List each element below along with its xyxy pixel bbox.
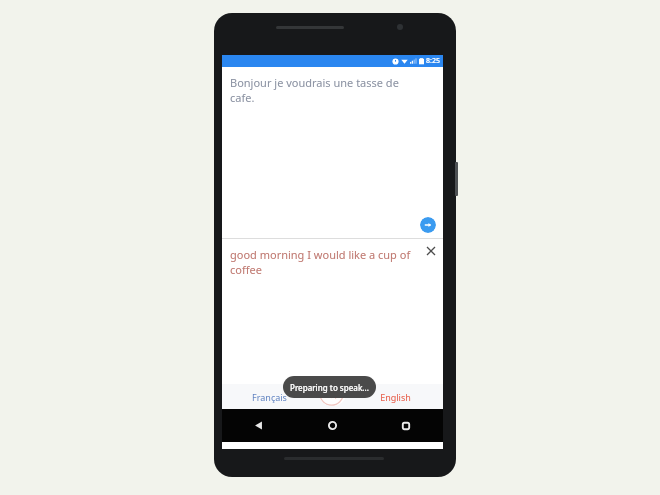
- button[interactable]: English: [347, 384, 443, 409]
- button[interactable]: Back: [222, 409, 295, 442]
- staticText: Français: [252, 391, 287, 403]
- staticText: Preparing to speak...: [290, 382, 369, 393]
- staticText: Bonjour je voudrais une tasse de cafe.: [230, 75, 425, 105]
- button[interactable]: Recent apps: [369, 409, 443, 442]
- button[interactable]: Clear: [423, 243, 439, 259]
- staticText: English: [380, 391, 411, 403]
- button[interactable]: Speak translation: [319, 381, 346, 406]
- staticText: good morning I would like a cup of coffe…: [230, 247, 419, 277]
- button[interactable]: Français: [222, 384, 317, 409]
- button[interactable]: Translate: [420, 217, 436, 233]
- staticText: 8:25: [426, 56, 440, 66]
- button[interactable]: Home: [295, 409, 369, 442]
